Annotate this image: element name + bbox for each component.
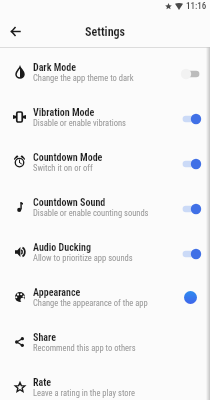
staticText: Share	[33, 332, 57, 344]
button[interactable]: Share	[0, 319, 210, 364]
staticText: Disable or enable counting sounds	[33, 208, 149, 218]
button[interactable]: Enabled	[181, 157, 201, 171]
staticText: Rate	[33, 377, 52, 389]
button[interactable]: Countdown Mode	[0, 139, 210, 184]
button[interactable]: Countdown Sound	[0, 184, 210, 229]
button[interactable]: Back	[2, 18, 28, 44]
staticText: Leave a rating in the play store	[33, 388, 136, 398]
button[interactable]: Dark Mode	[0, 49, 210, 94]
staticText: Recommend this app to others	[33, 343, 136, 353]
staticText: Switch it on or off	[33, 163, 93, 173]
staticText: Change the app theme to dark	[33, 73, 134, 83]
button[interactable]: Enabled	[181, 202, 201, 216]
staticText: Appearance	[33, 287, 81, 299]
staticText: Change the appearance of the app	[33, 298, 148, 308]
staticText: Countdown Mode	[33, 152, 103, 164]
button[interactable]: Disabled	[181, 67, 201, 81]
staticText: Settings	[85, 25, 126, 39]
staticText: Vibration Mode	[33, 107, 95, 119]
button[interactable]: Enabled	[181, 112, 201, 126]
button[interactable]: Enabled	[181, 247, 201, 261]
staticText: Countdown Sound	[33, 197, 106, 209]
button[interactable]: Audio Ducking	[0, 229, 210, 274]
button[interactable]: Rate	[0, 364, 210, 400]
button[interactable]: Appearance	[0, 274, 210, 319]
staticText: Audio Ducking	[33, 242, 92, 254]
staticText: Disable or enable vibrations	[33, 118, 126, 128]
button[interactable]: Theme colour	[184, 291, 197, 304]
staticText: 11:16	[186, 1, 207, 12]
button[interactable]: Vibration Mode	[0, 94, 210, 139]
staticText: Dark Mode	[33, 62, 77, 74]
staticText: Allow to prioritize app sounds	[33, 253, 133, 263]
